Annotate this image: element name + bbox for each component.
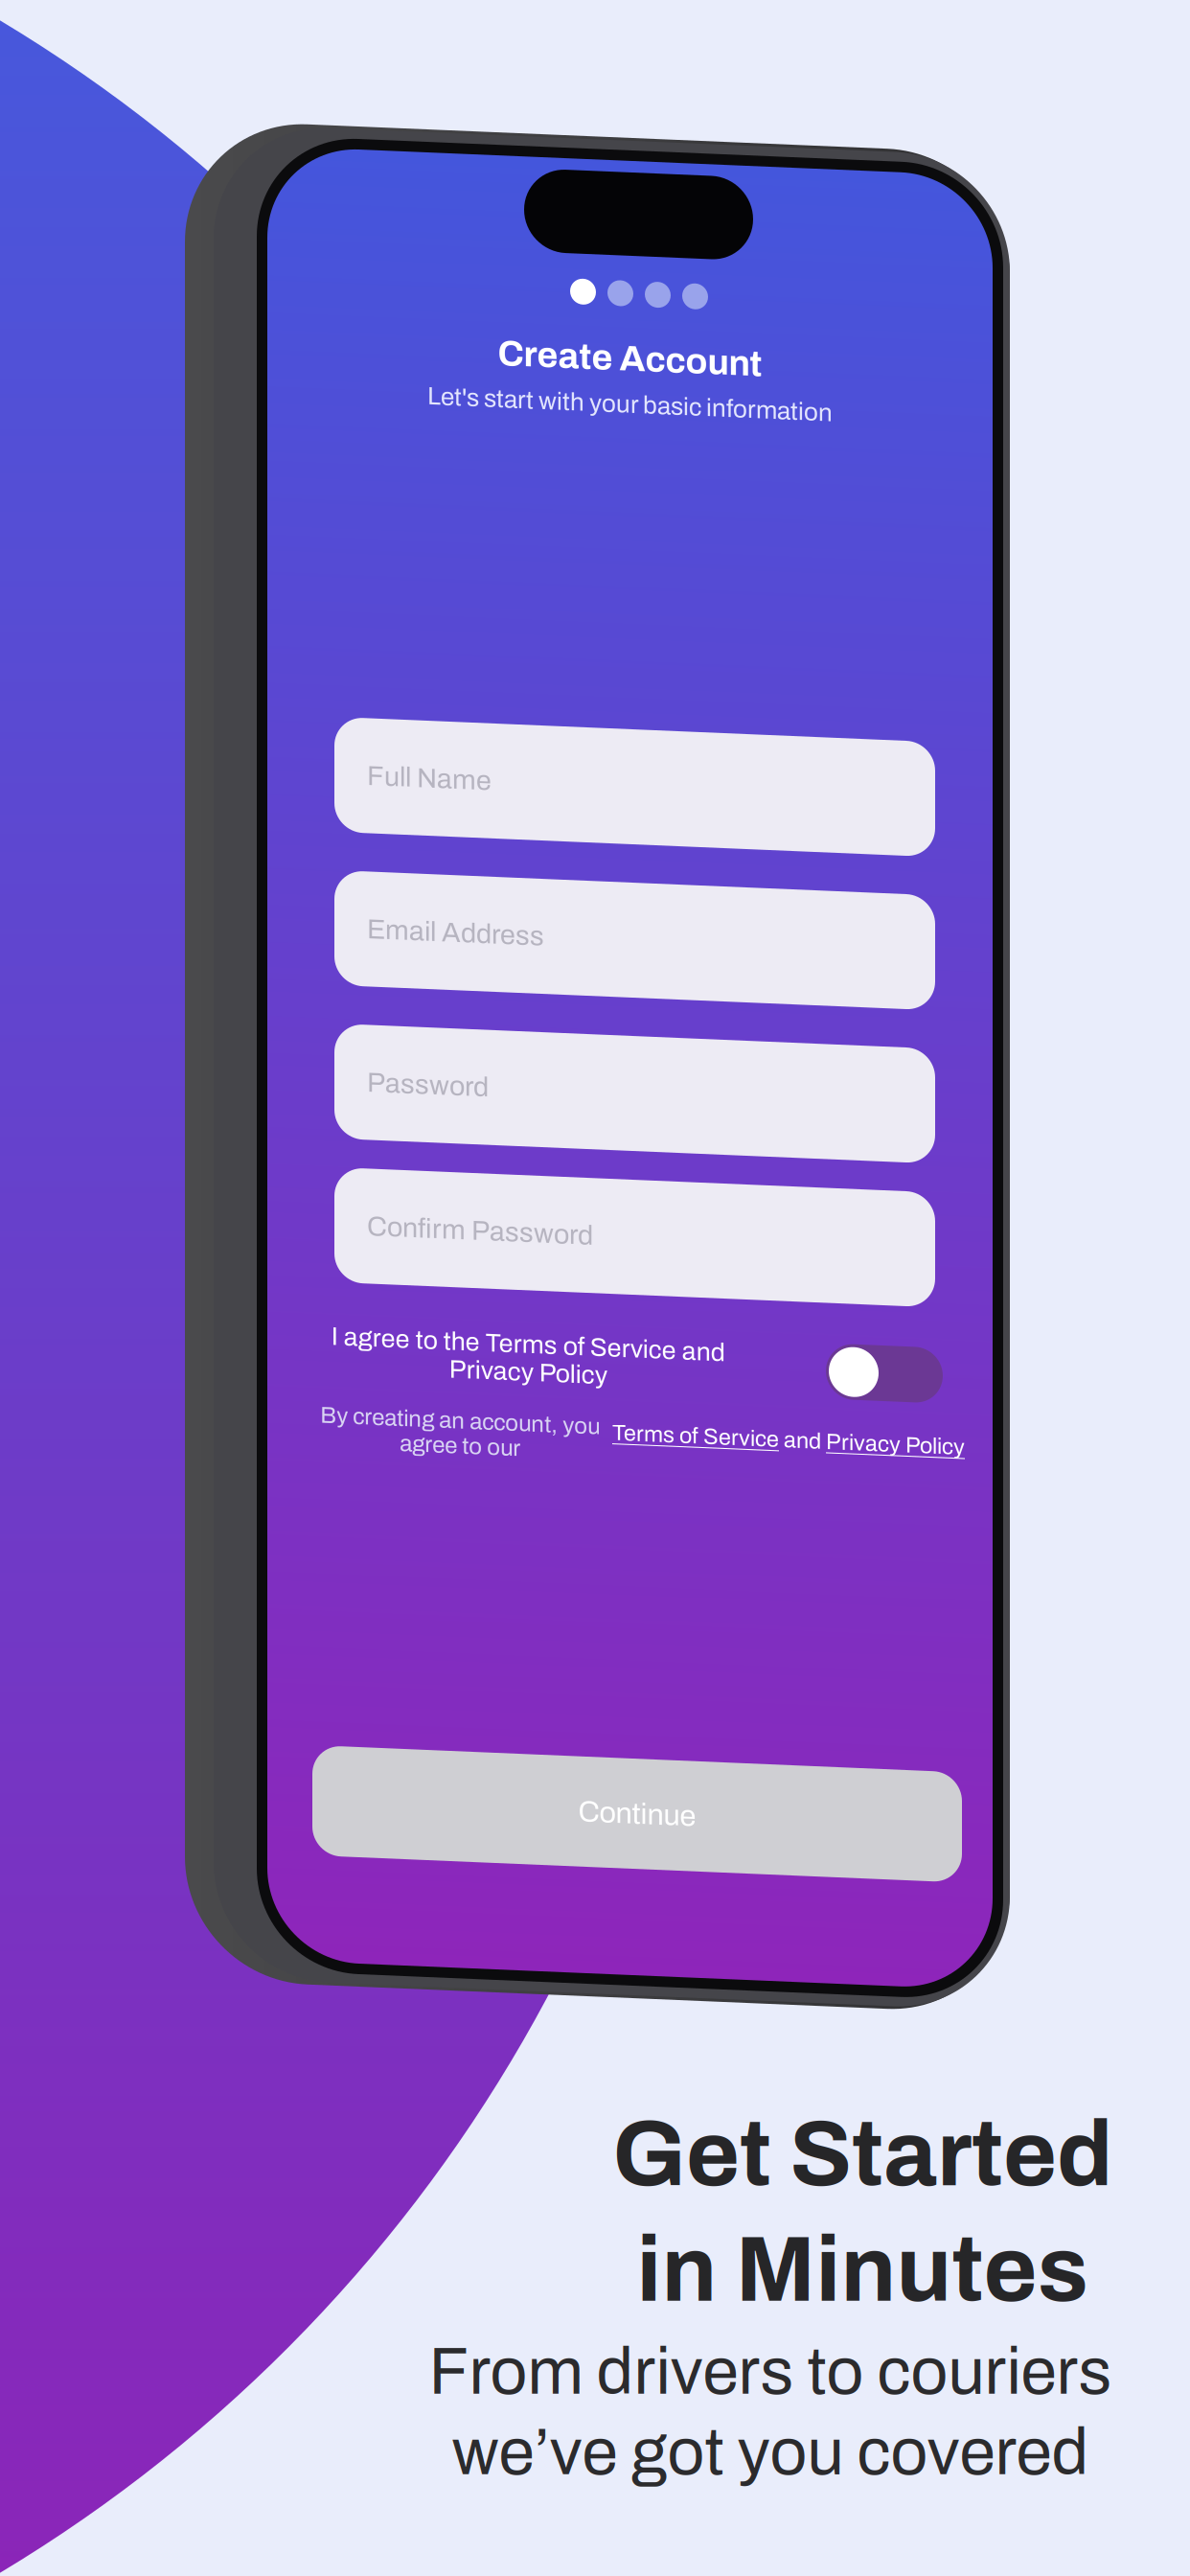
staticText: Get Started	[612, 2104, 1112, 2205]
staticText: I agree to the Terms of Service and Priv…	[331, 1320, 725, 1375]
staticText: Let's start with your basic information	[427, 376, 833, 403]
button[interactable]: Continue	[312, 1743, 962, 1853]
staticText: Confirm Password	[367, 1207, 593, 1237]
staticText: Terms of Service	[612, 1406, 779, 1430]
staticText: From drivers to couriers	[429, 2336, 1112, 2407]
staticText: Password	[367, 1063, 489, 1093]
staticText: Email Address	[367, 910, 544, 940]
staticText: in Minutes	[637, 2220, 1088, 2320]
staticText: Create Account	[498, 324, 762, 363]
staticText: Continue	[578, 1782, 696, 1814]
button[interactable]: Terms of Service	[612, 1406, 779, 1430]
staticText: we’ve got you covered	[452, 2417, 1089, 2488]
button[interactable]: Agree to Terms of Service and Privacy Po…	[826, 1320, 943, 1375]
staticText: Full Name	[367, 757, 492, 786]
staticText: By creating an account, you agree to our	[320, 1400, 600, 1450]
